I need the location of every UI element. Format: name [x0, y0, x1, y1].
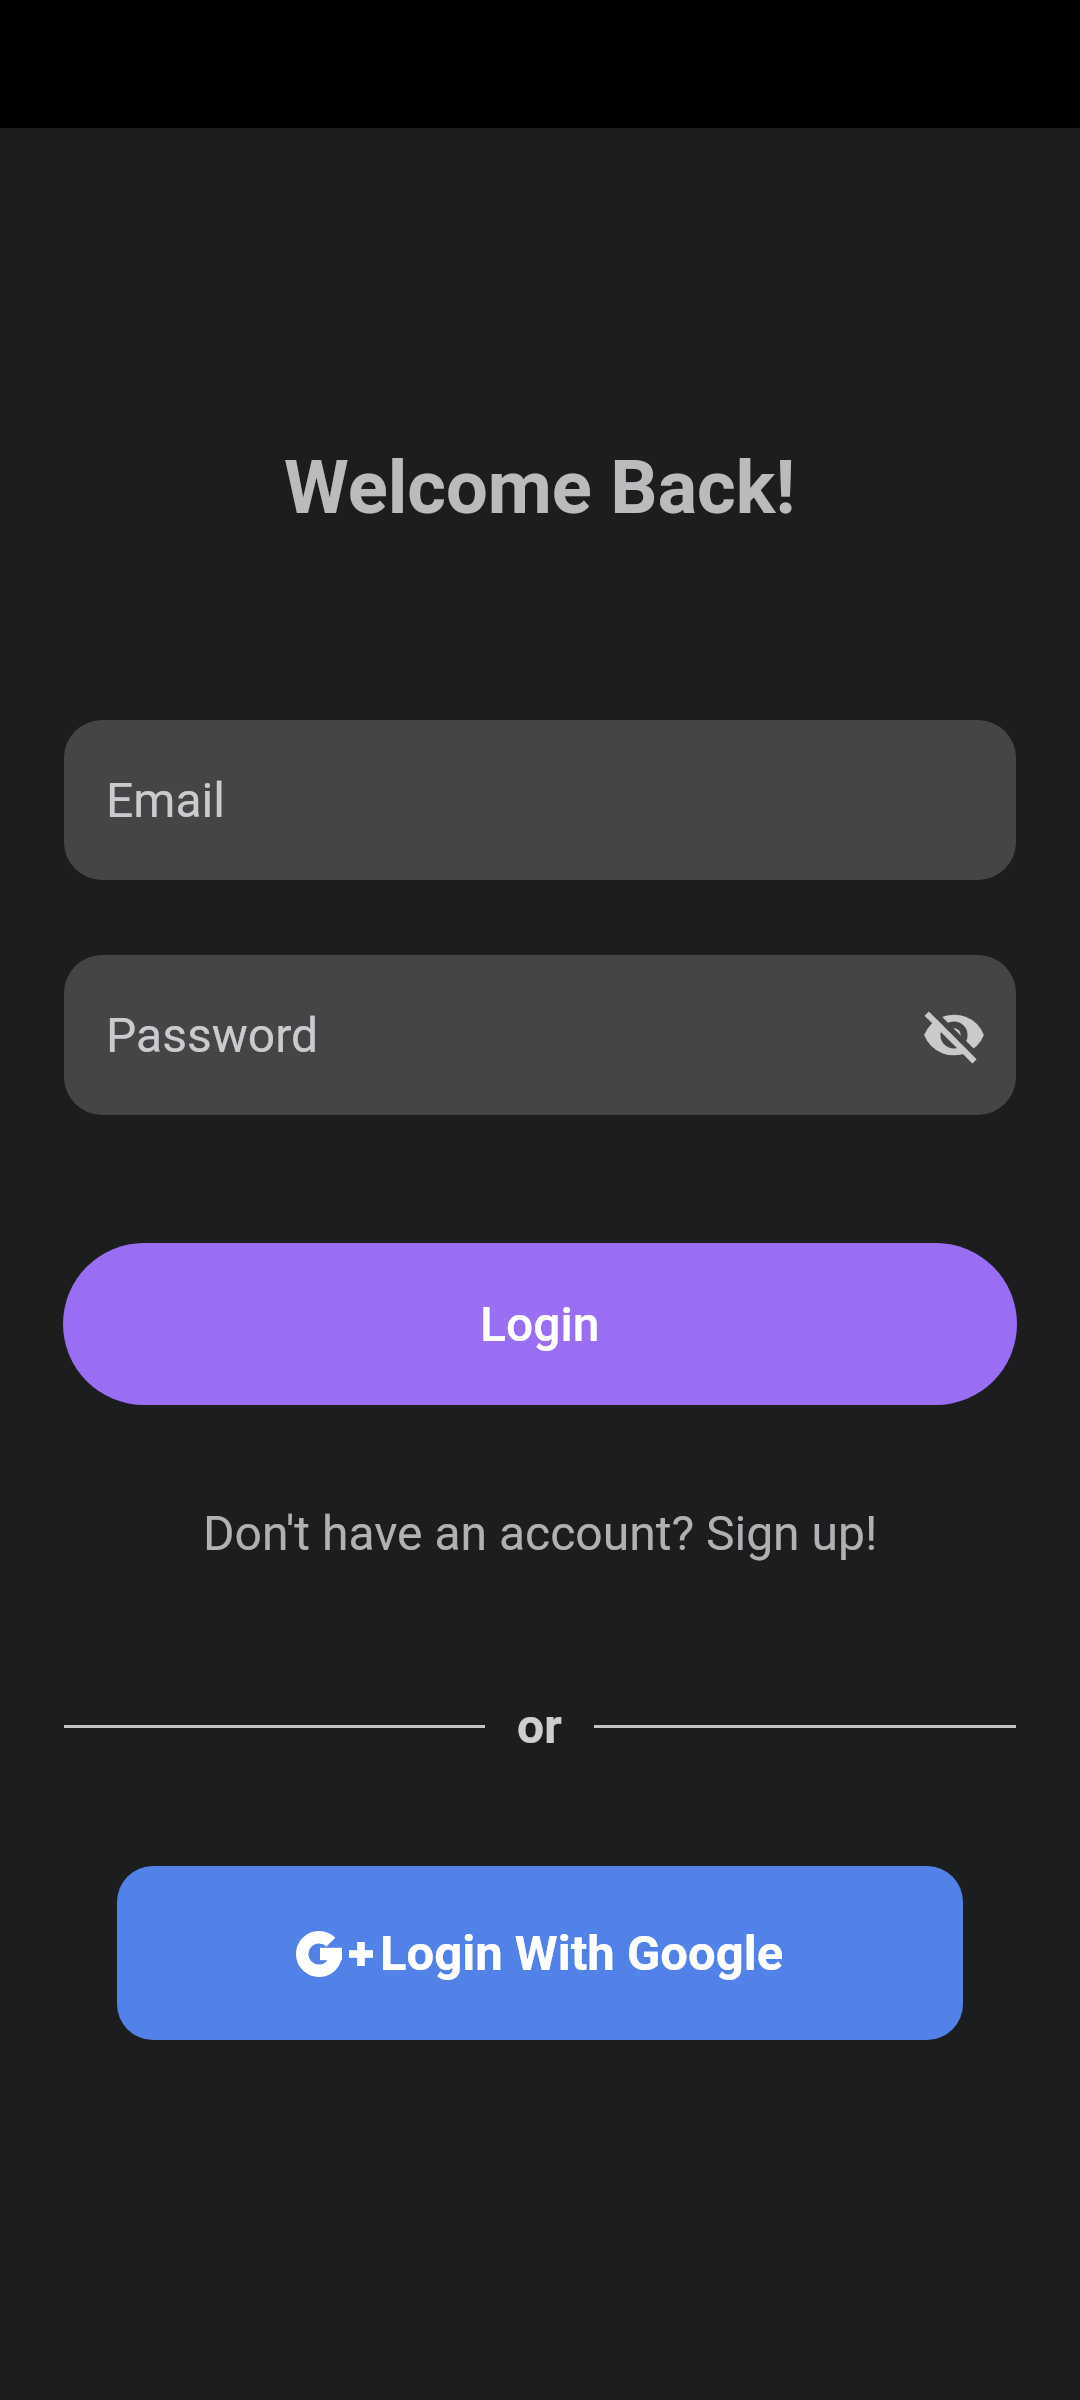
button[interactable]: Login With Google [117, 1866, 963, 2040]
staticText: Don't have an account? Sign up! [203, 1505, 878, 1561]
staticText: Email [106, 772, 225, 828]
staticText: Welcome Back! [284, 444, 796, 531]
button[interactable]: Email [64, 720, 1016, 880]
button[interactable]: Password [64, 955, 1016, 1115]
staticText: Login With Google [380, 1925, 784, 1982]
button[interactable] [921, 1002, 987, 1068]
staticText: or [517, 1698, 562, 1754]
staticText: Password [106, 1007, 319, 1063]
staticText: Login [480, 1296, 600, 1352]
button[interactable]: Don't have an account? Sign up! [0, 1470, 1080, 1595]
button[interactable]: Login [63, 1243, 1017, 1405]
